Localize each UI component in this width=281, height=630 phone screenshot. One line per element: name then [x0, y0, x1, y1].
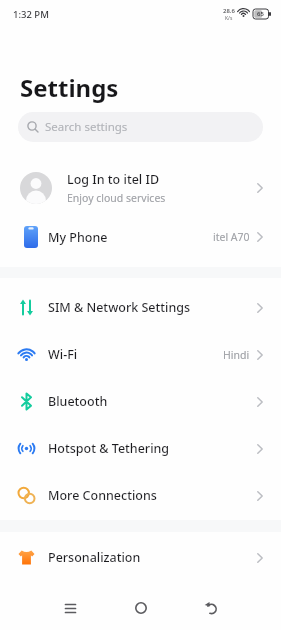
staticText: Hotspot & Tethering — [48, 440, 257, 457]
button[interactable] — [50, 586, 90, 630]
staticText: Bluetooth — [48, 393, 257, 410]
staticText: Personalization — [48, 549, 257, 566]
staticText: My Phone — [48, 229, 213, 246]
staticText: More Connections — [48, 487, 257, 504]
button[interactable] — [191, 586, 231, 630]
staticText: itel A70 — [213, 230, 250, 244]
staticText: 28.6 — [223, 7, 235, 15]
staticText: 1:32 PM — [13, 8, 49, 21]
staticText: Enjoy cloud services — [67, 191, 166, 205]
staticText: Log In to itel ID — [67, 171, 160, 188]
staticText: K/s — [225, 15, 233, 22]
button[interactable]: Log In to itel ID — [0, 163, 281, 213]
button[interactable]: My Phone — [0, 213, 281, 261]
button[interactable]: Personalization — [0, 534, 281, 581]
staticText: SIM & Network Settings — [48, 299, 257, 316]
button[interactable] — [121, 586, 161, 630]
staticText: Search settings — [45, 119, 128, 135]
staticText: Settings — [20, 71, 119, 104]
button[interactable]: Wi-Fi — [0, 331, 281, 378]
staticText: Hindi — [223, 348, 250, 362]
staticText: Wi-Fi — [48, 346, 223, 363]
button[interactable]: Search settings — [18, 112, 263, 142]
button[interactable]: More Connections — [0, 472, 281, 519]
button[interactable]: SIM & Network Settings — [0, 284, 281, 331]
button[interactable]: Bluetooth — [0, 378, 281, 425]
button[interactable]: Hotspot & Tethering — [0, 425, 281, 472]
staticText: 65 — [257, 10, 264, 18]
